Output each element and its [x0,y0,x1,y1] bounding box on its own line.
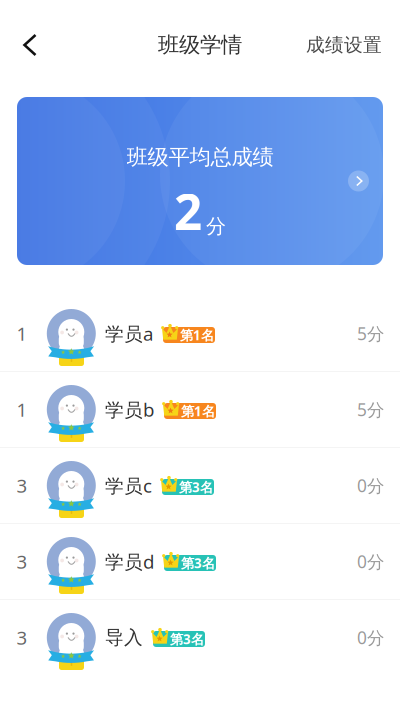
button[interactable]: 3 [0,600,400,675]
button[interactable]: Back [8,23,52,67]
staticText: 第3名 [179,478,213,496]
staticText: 学员c [105,473,152,498]
staticText: 0分 [357,474,384,497]
staticText: 5分 [357,398,384,421]
staticText: 0分 [357,550,384,573]
button[interactable]: 班级平均总成绩 [0,90,400,265]
button[interactable]: 成绩设置 [296,23,392,67]
staticText: 1 [16,321,27,346]
staticText: 第1名 [180,326,214,344]
staticText: 3 [16,625,27,650]
staticText: 导入 [105,626,143,649]
button[interactable]: 3 [0,448,400,523]
staticText: 第3名 [181,554,215,572]
button[interactable]: 1 [0,372,400,447]
staticText: 第1名 [181,402,215,420]
staticText: 3 [16,549,27,574]
button[interactable]: 3 [0,524,400,599]
staticText: 1 [16,397,27,422]
staticText: 学员d [105,549,154,574]
staticText: 班级平均总成绩 [126,144,273,170]
staticText: 2 [174,178,202,244]
staticText: 学员b [105,397,154,422]
staticText: 3 [16,473,27,498]
staticText: 成绩设置 [306,33,382,56]
staticText: 5分 [357,322,384,345]
staticText: 分 [206,214,226,239]
staticText: 第3名 [170,630,204,648]
staticText: 班级学情 [158,32,242,58]
staticText: 学员a [105,321,153,346]
staticText: 0分 [357,626,384,649]
button[interactable]: 1 [0,296,400,371]
